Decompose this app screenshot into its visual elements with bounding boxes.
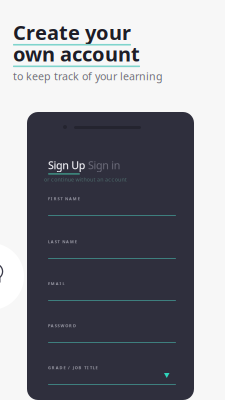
staticText: FIRST NAME bbox=[48, 196, 80, 201]
staticText: own account bbox=[13, 41, 140, 67]
button[interactable]: Sign in bbox=[88, 158, 121, 172]
staticText: GRADE / JOB TITLE bbox=[48, 365, 98, 370]
button[interactable]: or continue without an account bbox=[44, 176, 127, 183]
staticText: Create your bbox=[13, 19, 131, 46]
staticText: PASSWORD bbox=[48, 323, 76, 328]
staticText: to keep track of your learning bbox=[13, 69, 163, 83]
button[interactable]: Sign Up bbox=[48, 158, 86, 174]
staticText: Sign Up bbox=[48, 158, 86, 172]
staticText: or continue without an account bbox=[44, 176, 127, 183]
staticText: EMAIL bbox=[48, 281, 64, 286]
staticText: Sign in bbox=[88, 158, 121, 172]
staticText: LAST NAME bbox=[48, 239, 77, 244]
